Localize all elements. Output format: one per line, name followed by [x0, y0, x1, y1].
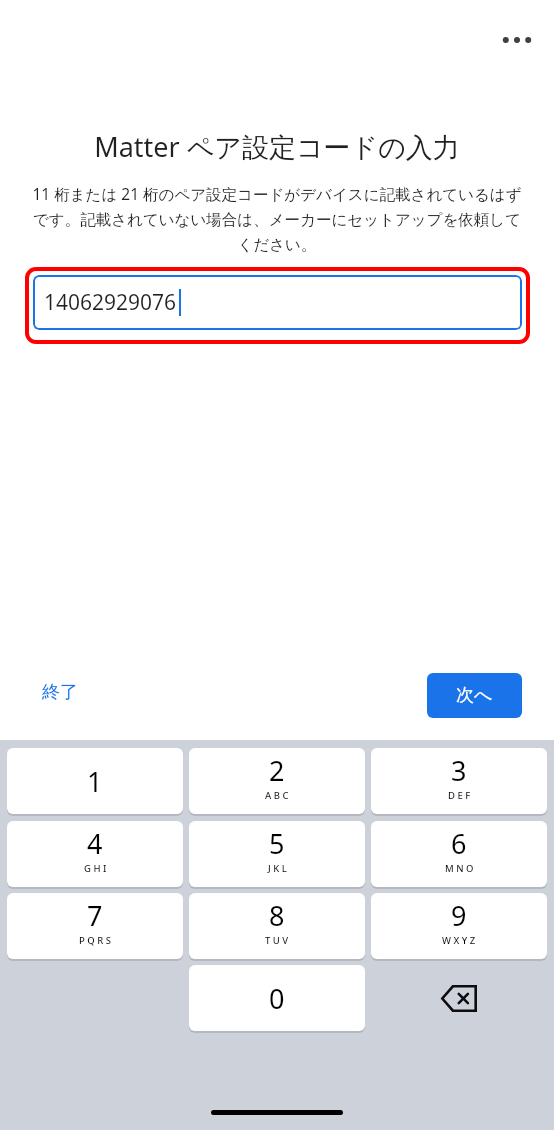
staticText: 4 — [87, 825, 103, 862]
button[interactable]: 6 — [371, 821, 547, 887]
button[interactable]: 8 — [189, 893, 365, 959]
button[interactable]: 14062929076 — [33, 275, 522, 330]
staticText: 0 — [269, 980, 285, 1017]
button[interactable]: 2 — [189, 748, 365, 814]
staticText: 14062929076 — [44, 288, 177, 317]
button[interactable]: More options — [494, 21, 540, 59]
staticText: D E F — [448, 789, 471, 802]
staticText: G H I — [84, 862, 107, 875]
staticText: 3 — [451, 752, 467, 789]
staticText: 2 — [269, 752, 285, 789]
staticText: 終了 — [42, 681, 78, 704]
staticText: P Q R S — [79, 934, 111, 947]
button[interactable]: 終了 — [38, 677, 82, 708]
staticText: 9 — [451, 897, 467, 934]
staticText: A B C — [265, 789, 289, 802]
staticText: 5 — [269, 825, 285, 862]
staticText: J K L — [268, 862, 287, 875]
staticText: 8 — [269, 897, 285, 934]
button[interactable]: 次へ — [427, 673, 522, 718]
staticText: M N O — [445, 862, 474, 875]
staticText: Matter ペア設定コードの入力 — [94, 128, 460, 165]
staticText: 11 桁または 21 桁のペア設定コードがデバイスに記載されているはずです。記載… — [31, 183, 523, 254]
staticText: 7 — [87, 897, 103, 934]
staticText: 次へ — [456, 684, 493, 707]
button[interactable]: 5 — [189, 821, 365, 887]
staticText: 1 — [87, 763, 103, 800]
button[interactable]: 7 — [7, 893, 183, 959]
button[interactable]: 4 — [7, 821, 183, 887]
button[interactable]: 9 — [371, 893, 547, 959]
button[interactable]: Delete — [371, 965, 547, 1031]
staticText: W X Y Z — [442, 934, 476, 947]
button[interactable]: 1 — [7, 748, 183, 814]
button[interactable]: 0 — [189, 965, 365, 1031]
staticText: T U V — [265, 934, 289, 947]
button[interactable]: 3 — [371, 748, 547, 814]
staticText: 6 — [451, 825, 467, 862]
